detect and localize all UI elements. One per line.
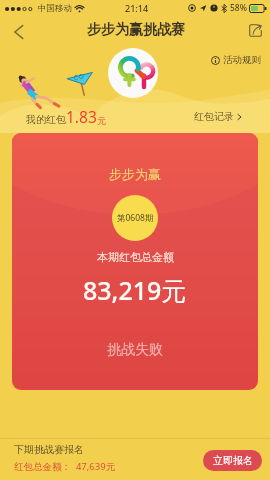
staticText: 第0608期 [117, 212, 154, 224]
staticText: 21:14 [125, 2, 149, 14]
button[interactable]: Share [240, 15, 270, 45]
staticText: 中国移动 [38, 3, 72, 14]
staticText: 元 [97, 115, 106, 126]
button[interactable]: 活动规则 [211, 54, 261, 66]
staticText: 红包记录 [194, 110, 234, 123]
staticText: 步步为赢 [109, 166, 161, 182]
staticText: 1.83 [66, 106, 97, 127]
button[interactable]: 立即报名 [203, 450, 262, 471]
staticText: 下期挑战赛报名 [14, 443, 84, 456]
button[interactable]: 红包记录 [194, 110, 242, 123]
staticText: 58% [230, 2, 247, 14]
staticText: 步步为赢挑战赛 [87, 21, 185, 39]
staticText: 活动规则 [223, 54, 261, 66]
staticText: 红包总金额： 47,639元 [14, 460, 116, 473]
staticText: 挑战失败 [107, 341, 163, 359]
staticText: 我的红包 [26, 113, 66, 126]
staticText: 本期红包总金额 [97, 250, 174, 264]
staticText: 83,219元 [83, 273, 187, 307]
button[interactable]: Back [2, 18, 34, 46]
staticText: 立即报名 [213, 454, 253, 467]
